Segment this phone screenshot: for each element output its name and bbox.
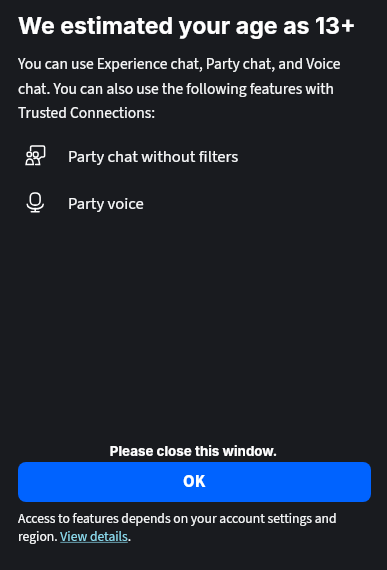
button[interactable]: Party chat (0, 142, 387, 172)
other: Party voice (25, 192, 46, 213)
staticText: You can use Experience chat, Party chat,… (18, 53, 354, 124)
staticText: Party chat without filters (68, 145, 239, 169)
staticText: Party voice (68, 192, 144, 216)
button[interactable]: OK (18, 462, 371, 502)
staticText: Please close this window. (0, 443, 387, 459)
staticText: We estimated your age as 13+ (18, 12, 356, 40)
other: Party chat (25, 145, 46, 166)
button[interactable]: Party voice (0, 189, 387, 219)
staticText: Access to features depends on your accou… (18, 509, 361, 547)
staticText: OK (183, 470, 206, 494)
